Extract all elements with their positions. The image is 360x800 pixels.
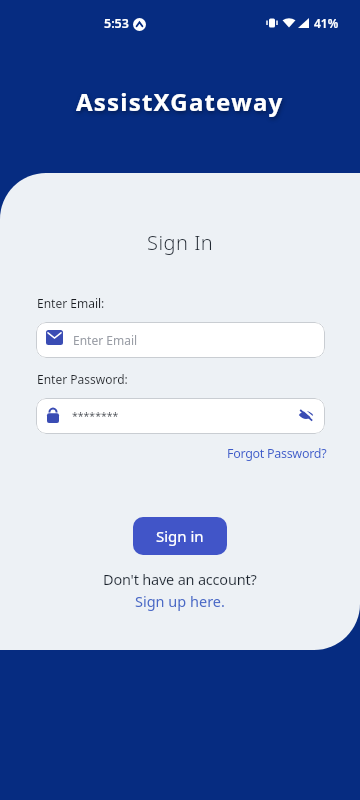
staticText: ********	[72, 409, 119, 423]
staticText: Don't have an account?	[103, 569, 257, 589]
staticText: Enter Email:	[37, 295, 105, 311]
button[interactable]: Sign up here.	[135, 591, 225, 611]
staticText: Sign up here.	[135, 591, 225, 611]
button[interactable]: ********	[36, 398, 325, 434]
staticText: Sign in	[156, 526, 204, 546]
staticText: 5:53	[104, 15, 129, 32]
button[interactable]: Forgot Password?	[227, 445, 327, 462]
staticText: 41%	[314, 15, 339, 31]
staticText: Forgot Password?	[227, 445, 327, 462]
staticText: Enter Password:	[37, 371, 128, 387]
staticText: AssistXGateway	[76, 85, 284, 118]
staticText: Enter Email	[73, 332, 138, 348]
button[interactable]: Sign in	[133, 517, 227, 555]
button[interactable]	[298, 408, 314, 422]
staticText: Sign In	[147, 229, 214, 256]
button[interactable]: Enter Email	[36, 322, 325, 358]
